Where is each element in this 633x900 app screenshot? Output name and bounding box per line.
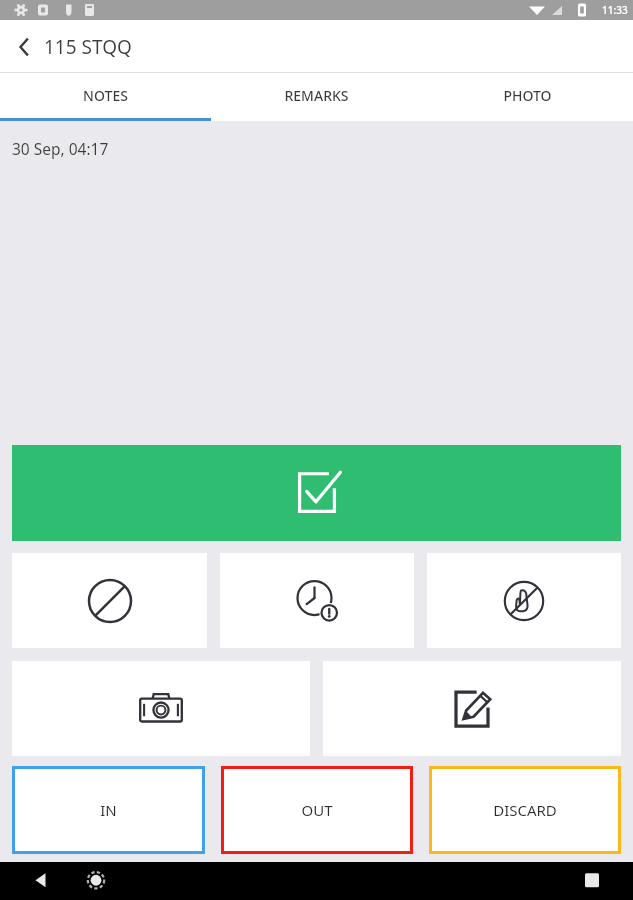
staticText: 11:33: [602, 3, 628, 17]
button[interactable]: REMARKS: [211, 73, 422, 118]
button[interactable]: NOTES: [0, 73, 211, 118]
staticText: DISCARD: [493, 800, 557, 820]
button[interactable]: Confirm: [12, 445, 621, 541]
button[interactable]: Camera: [12, 661, 310, 756]
button[interactable]: Edit: [323, 661, 621, 756]
button[interactable]: Not allowed: [12, 553, 207, 648]
button[interactable]: DISCARD: [429, 766, 621, 854]
button[interactable]: PHOTO: [422, 73, 633, 118]
button[interactable]: Do not touch: [427, 553, 621, 648]
staticText: 30 Sep, 04:17: [12, 138, 109, 159]
staticText: REMARKS: [284, 86, 349, 105]
button[interactable]: OUT: [221, 766, 413, 854]
staticText: OUT: [301, 800, 333, 820]
button[interactable]: Delay: [220, 553, 414, 648]
button[interactable]: Back: [4, 27, 44, 67]
staticText: PHOTO: [503, 86, 552, 105]
button[interactable]: IN: [12, 766, 205, 854]
staticText: NOTES: [83, 86, 128, 105]
staticText: 115 STQQ: [44, 34, 132, 60]
staticText: IN: [100, 800, 117, 820]
